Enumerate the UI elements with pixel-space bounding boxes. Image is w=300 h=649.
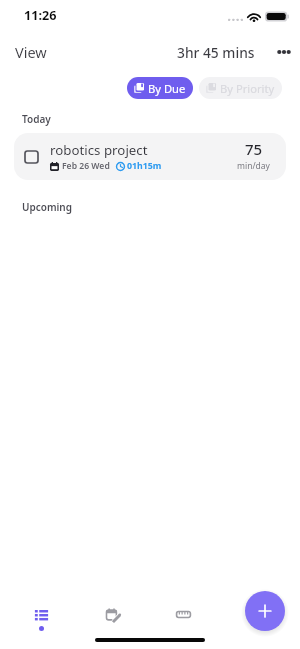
staticText: By Due: [148, 81, 186, 96]
staticText: View: [15, 42, 47, 62]
button[interactable]: Measure: [153, 603, 213, 635]
staticText: 01h15m: [127, 160, 162, 172]
button[interactable]: Toggle task complete: [14, 133, 286, 180]
staticText: min/day: [237, 160, 270, 172]
staticText: Today: [22, 112, 51, 126]
button[interactable]: Add task: [245, 591, 285, 631]
staticText: 3hr 45 mins: [177, 43, 255, 62]
button[interactable]: By Due: [127, 77, 193, 99]
staticText: Upcoming: [22, 200, 72, 214]
staticText: robotics project: [50, 141, 148, 159]
staticText: 75: [245, 139, 263, 159]
button[interactable]: Toggle task complete: [20, 146, 42, 168]
staticText: 11:26: [24, 7, 57, 24]
staticText: By Priority: [220, 81, 275, 96]
staticText: Feb 26 Wed: [62, 160, 110, 172]
button[interactable]: More options: [273, 41, 295, 63]
button[interactable]: By Priority: [199, 77, 282, 99]
button[interactable]: Tasks: [11, 603, 71, 635]
button[interactable]: Schedule: [82, 603, 142, 635]
